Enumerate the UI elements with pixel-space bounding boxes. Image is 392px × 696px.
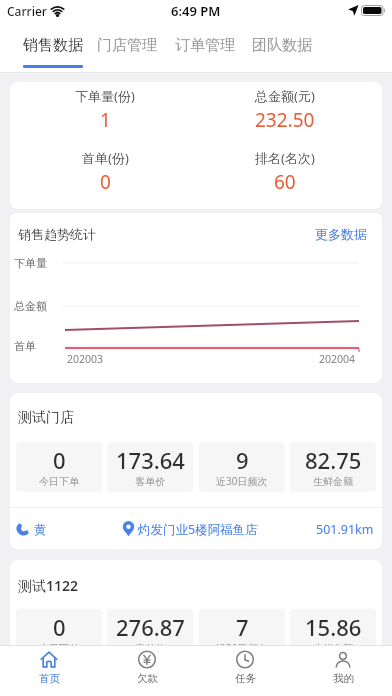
staticText: 下单量(份) — [75, 87, 135, 105]
staticText: 客单价 — [135, 642, 165, 655]
staticText: 总金额(元) — [255, 87, 315, 105]
button[interactable] — [294, 646, 392, 696]
staticText: 排名(名次) — [255, 149, 315, 167]
staticText: 我的 — [333, 672, 354, 685]
button[interactable]: 测试门店 — [10, 393, 382, 549]
button[interactable]: 订单管理 — [168, 32, 242, 58]
button[interactable]: 门店管理 — [90, 32, 164, 58]
button[interactable] — [0, 646, 98, 696]
staticText: 生鲜金额 — [313, 475, 353, 488]
staticText: 测试1122 — [18, 576, 79, 595]
staticText: 门店管理 — [97, 36, 157, 55]
staticText: 0 — [100, 169, 111, 195]
staticText: 60 — [274, 169, 296, 195]
staticText: 9 — [236, 445, 249, 475]
staticText: Carrier — [7, 3, 47, 19]
staticText: 更多数据 — [315, 226, 367, 242]
staticText: 灼发门业5楼阿福鱼店 — [138, 521, 258, 538]
staticText: 15.86 — [305, 612, 362, 642]
staticText: 任务 — [235, 672, 256, 685]
staticText: 7 — [236, 612, 249, 642]
button[interactable] — [98, 646, 196, 696]
staticText: 202003 — [67, 352, 104, 366]
button[interactable]: 更多数据 — [301, 220, 367, 248]
staticText: 232.50 — [255, 107, 315, 133]
staticText: 近30日频次 — [216, 641, 268, 655]
staticText: 今日下单 — [39, 475, 79, 488]
staticText: 销售数据 — [23, 36, 83, 55]
staticText: 客单价 — [135, 475, 165, 488]
button[interactable] — [120, 508, 300, 549]
staticText: 首页 — [39, 672, 60, 685]
staticText: 0 — [53, 612, 66, 642]
staticText: 501.91km — [316, 521, 374, 538]
staticText: 下单量 — [14, 256, 47, 270]
staticText: 欠款 — [137, 672, 158, 685]
staticText: 生鲜金额 — [313, 642, 353, 655]
staticText: 202004 — [319, 352, 356, 366]
staticText: 1 — [100, 107, 111, 133]
button[interactable]: 销售数据 — [16, 32, 90, 58]
staticText: 销售趋势统计 — [18, 226, 96, 242]
staticText: 首单 — [14, 339, 36, 353]
staticText: 近30日频次 — [216, 474, 268, 488]
staticText: 173.64 — [116, 445, 185, 475]
staticText: 82.75 — [305, 445, 362, 475]
button[interactable] — [196, 646, 294, 696]
staticText: 订单管理 — [175, 36, 235, 55]
staticText: 测试门店 — [18, 409, 74, 427]
staticText: 总金额 — [14, 299, 47, 313]
staticText: 团队数据 — [252, 36, 312, 55]
staticText: 6:49 PM — [171, 2, 221, 20]
staticText: 0 — [53, 445, 66, 475]
staticText: 首单(份) — [82, 149, 129, 167]
staticText: 276.87 — [116, 612, 185, 642]
staticText: 黄 — [34, 522, 47, 538]
button[interactable]: 测试1122 — [10, 560, 382, 696]
button[interactable]: 下单量(份) — [10, 82, 382, 209]
staticText: 今日下单 — [39, 642, 79, 655]
button[interactable]: 团队数据 — [245, 32, 319, 58]
button[interactable] — [10, 508, 120, 549]
